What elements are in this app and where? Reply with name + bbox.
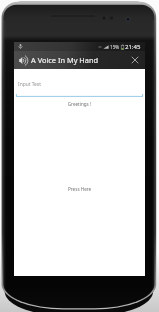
button[interactable]: Input Text — [16, 75, 143, 95]
staticText: 21:45 — [125, 43, 141, 51]
button[interactable]: Close — [127, 51, 143, 69]
staticText: Greetings ! — [14, 101, 145, 107]
staticText: A Voice In My Hand — [31, 55, 99, 65]
button[interactable]: Press Here — [62, 183, 98, 195]
staticText: 15% — [110, 44, 120, 50]
button[interactable]: A Voice In My Hand — [14, 51, 145, 69]
staticText: Input Text — [18, 81, 42, 88]
staticText: Press Here — [68, 186, 92, 192]
